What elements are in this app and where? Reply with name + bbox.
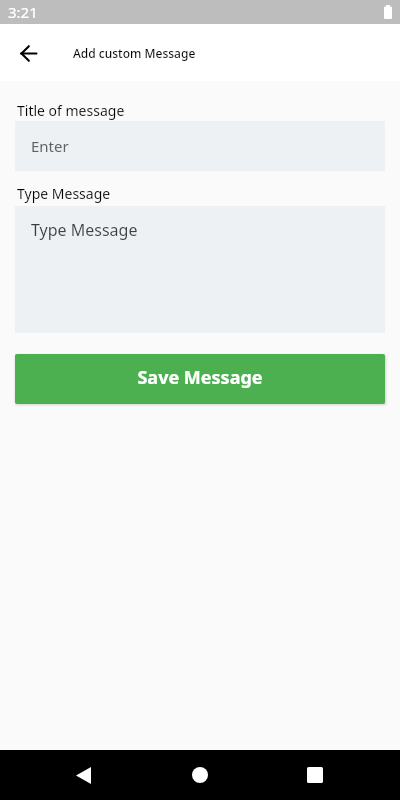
button[interactable]: Back	[59, 750, 108, 800]
staticText: Add custom Message	[73, 45, 196, 61]
staticText: Enter	[31, 136, 69, 156]
button[interactable]: Back	[8, 33, 48, 73]
staticText: Type Message	[31, 219, 138, 241]
button[interactable]: Save Message	[15, 354, 385, 404]
staticText: Title of message	[17, 101, 125, 120]
button[interactable]: Home	[176, 750, 224, 800]
staticText: Save Message	[137, 365, 263, 390]
button[interactable]: Enter	[15, 121, 385, 171]
staticText: Type Message	[17, 184, 111, 203]
button[interactable]: Type Message	[15, 206, 385, 333]
staticText: 3:21	[8, 2, 38, 22]
button[interactable]: Recent apps	[291, 750, 339, 800]
